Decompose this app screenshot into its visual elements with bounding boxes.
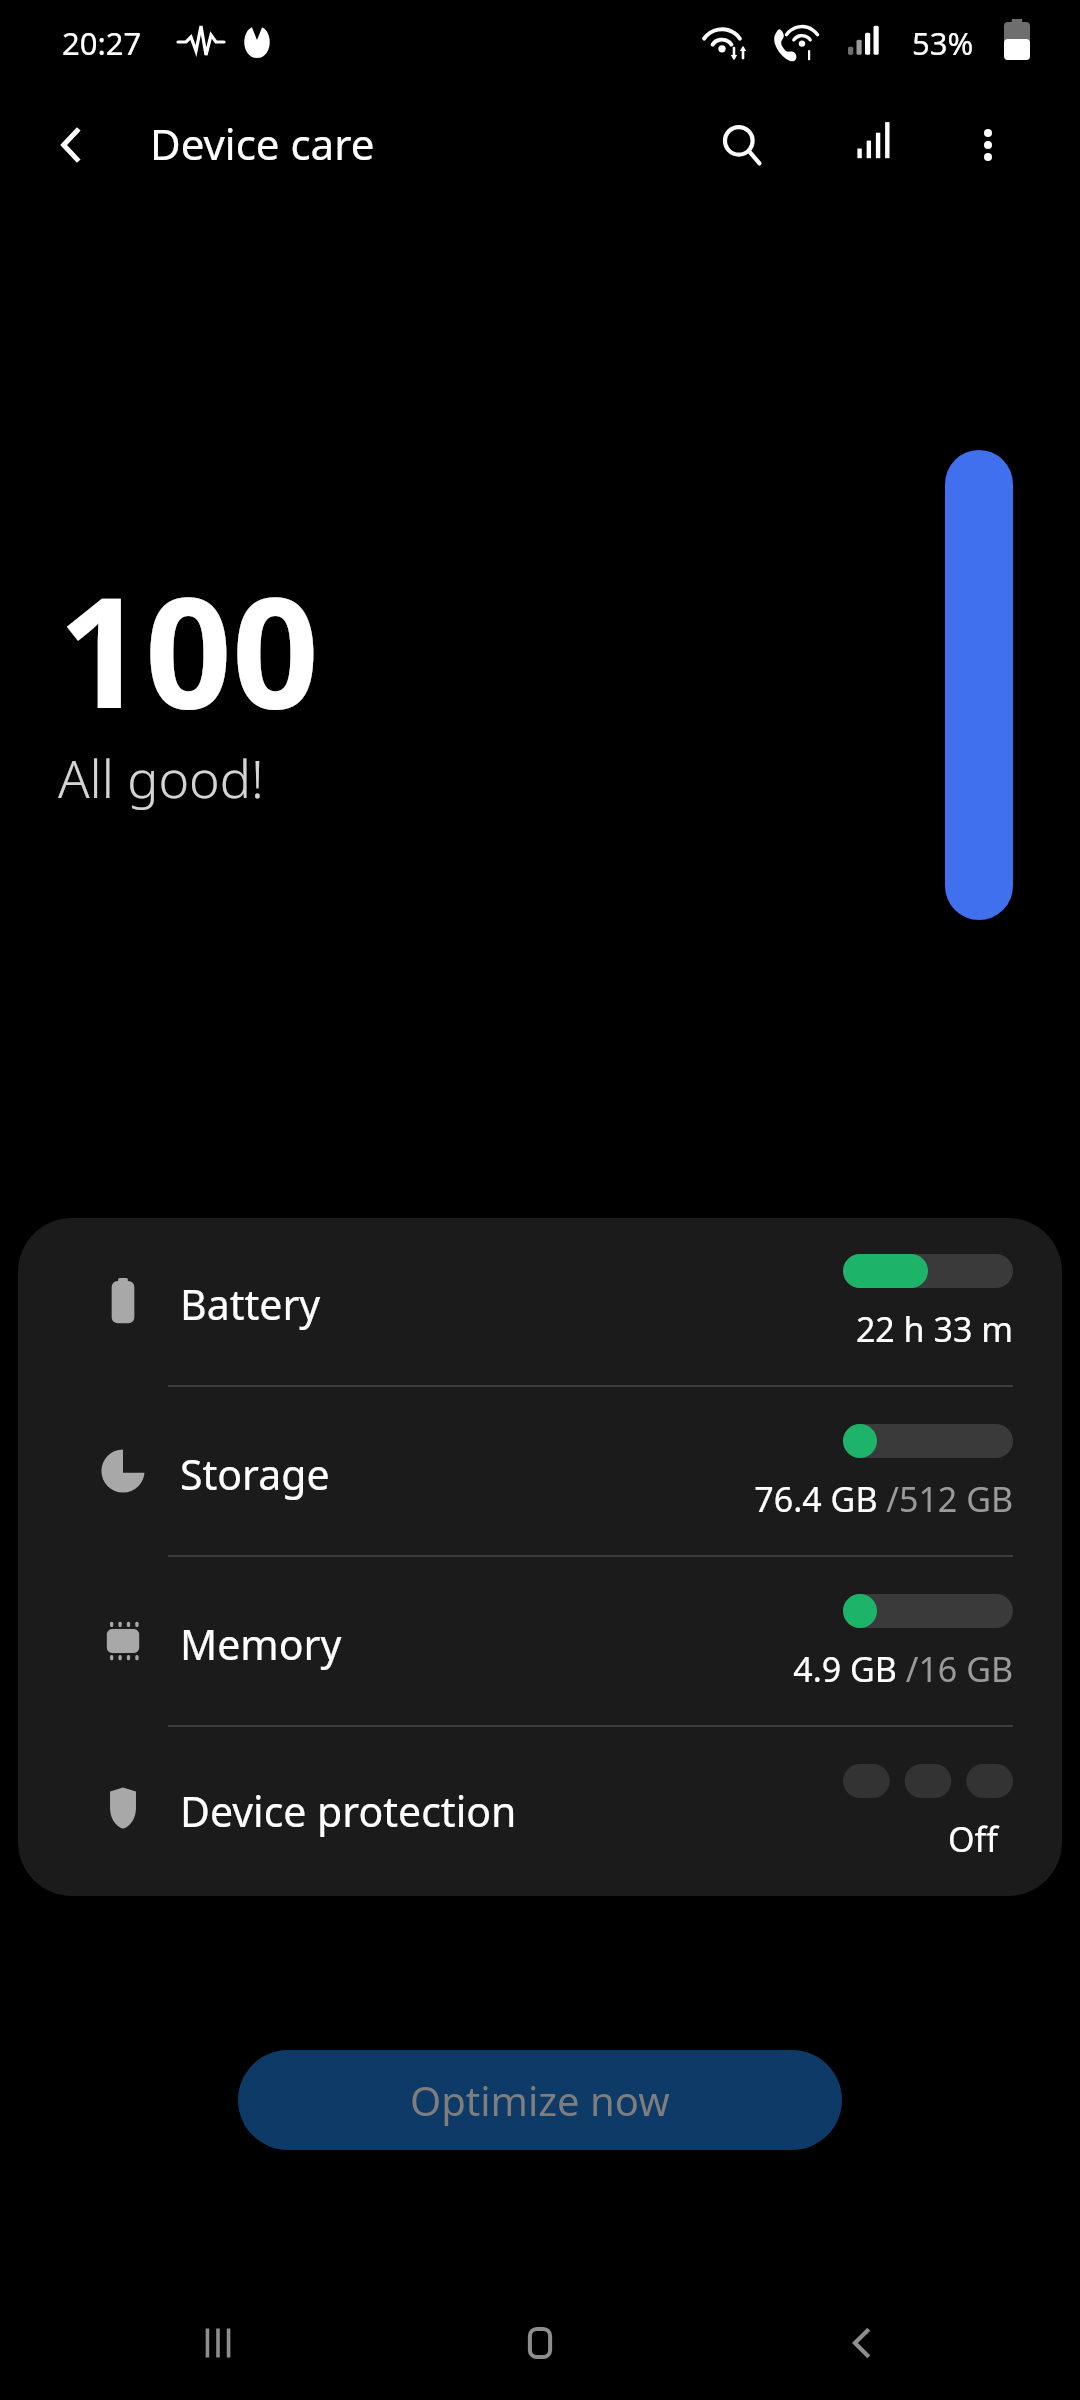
button[interactable]: Device protection (18, 1728, 1062, 1896)
staticText: Storage (180, 1446, 330, 1502)
button[interactable]: Battery (18, 1218, 1062, 1388)
button[interactable]: Back (30, 103, 114, 187)
button[interactable]: Storage (18, 1388, 1062, 1558)
staticText: Device protection (180, 1783, 517, 1839)
button[interactable]: Usage statistics (833, 103, 917, 187)
button[interactable]: Search (700, 103, 784, 187)
staticText: 4.9 GB /16 GB (793, 1646, 1013, 1692)
staticText: All good! (58, 742, 264, 813)
staticText: Memory (180, 1616, 342, 1672)
button[interactable]: Optimize now (238, 2050, 842, 2150)
staticText: Off (948, 1816, 998, 1862)
button[interactable]: Memory (18, 1558, 1062, 1728)
button[interactable]: Back (822, 2303, 902, 2383)
button[interactable]: Recent apps (178, 2303, 258, 2383)
staticText: 20:27 (62, 22, 142, 64)
staticText: 76.4 GB /512 GB (754, 1476, 1013, 1522)
staticText: Optimize now (410, 2073, 670, 2127)
staticText: Device care (150, 115, 375, 172)
button[interactable]: Home (500, 2303, 580, 2383)
button[interactable]: More options (946, 103, 1030, 187)
staticText: 53% (912, 22, 974, 64)
staticText: Battery (180, 1276, 321, 1332)
staticText: 100 (58, 546, 319, 753)
staticText: 22 h 33 m (855, 1306, 1013, 1352)
